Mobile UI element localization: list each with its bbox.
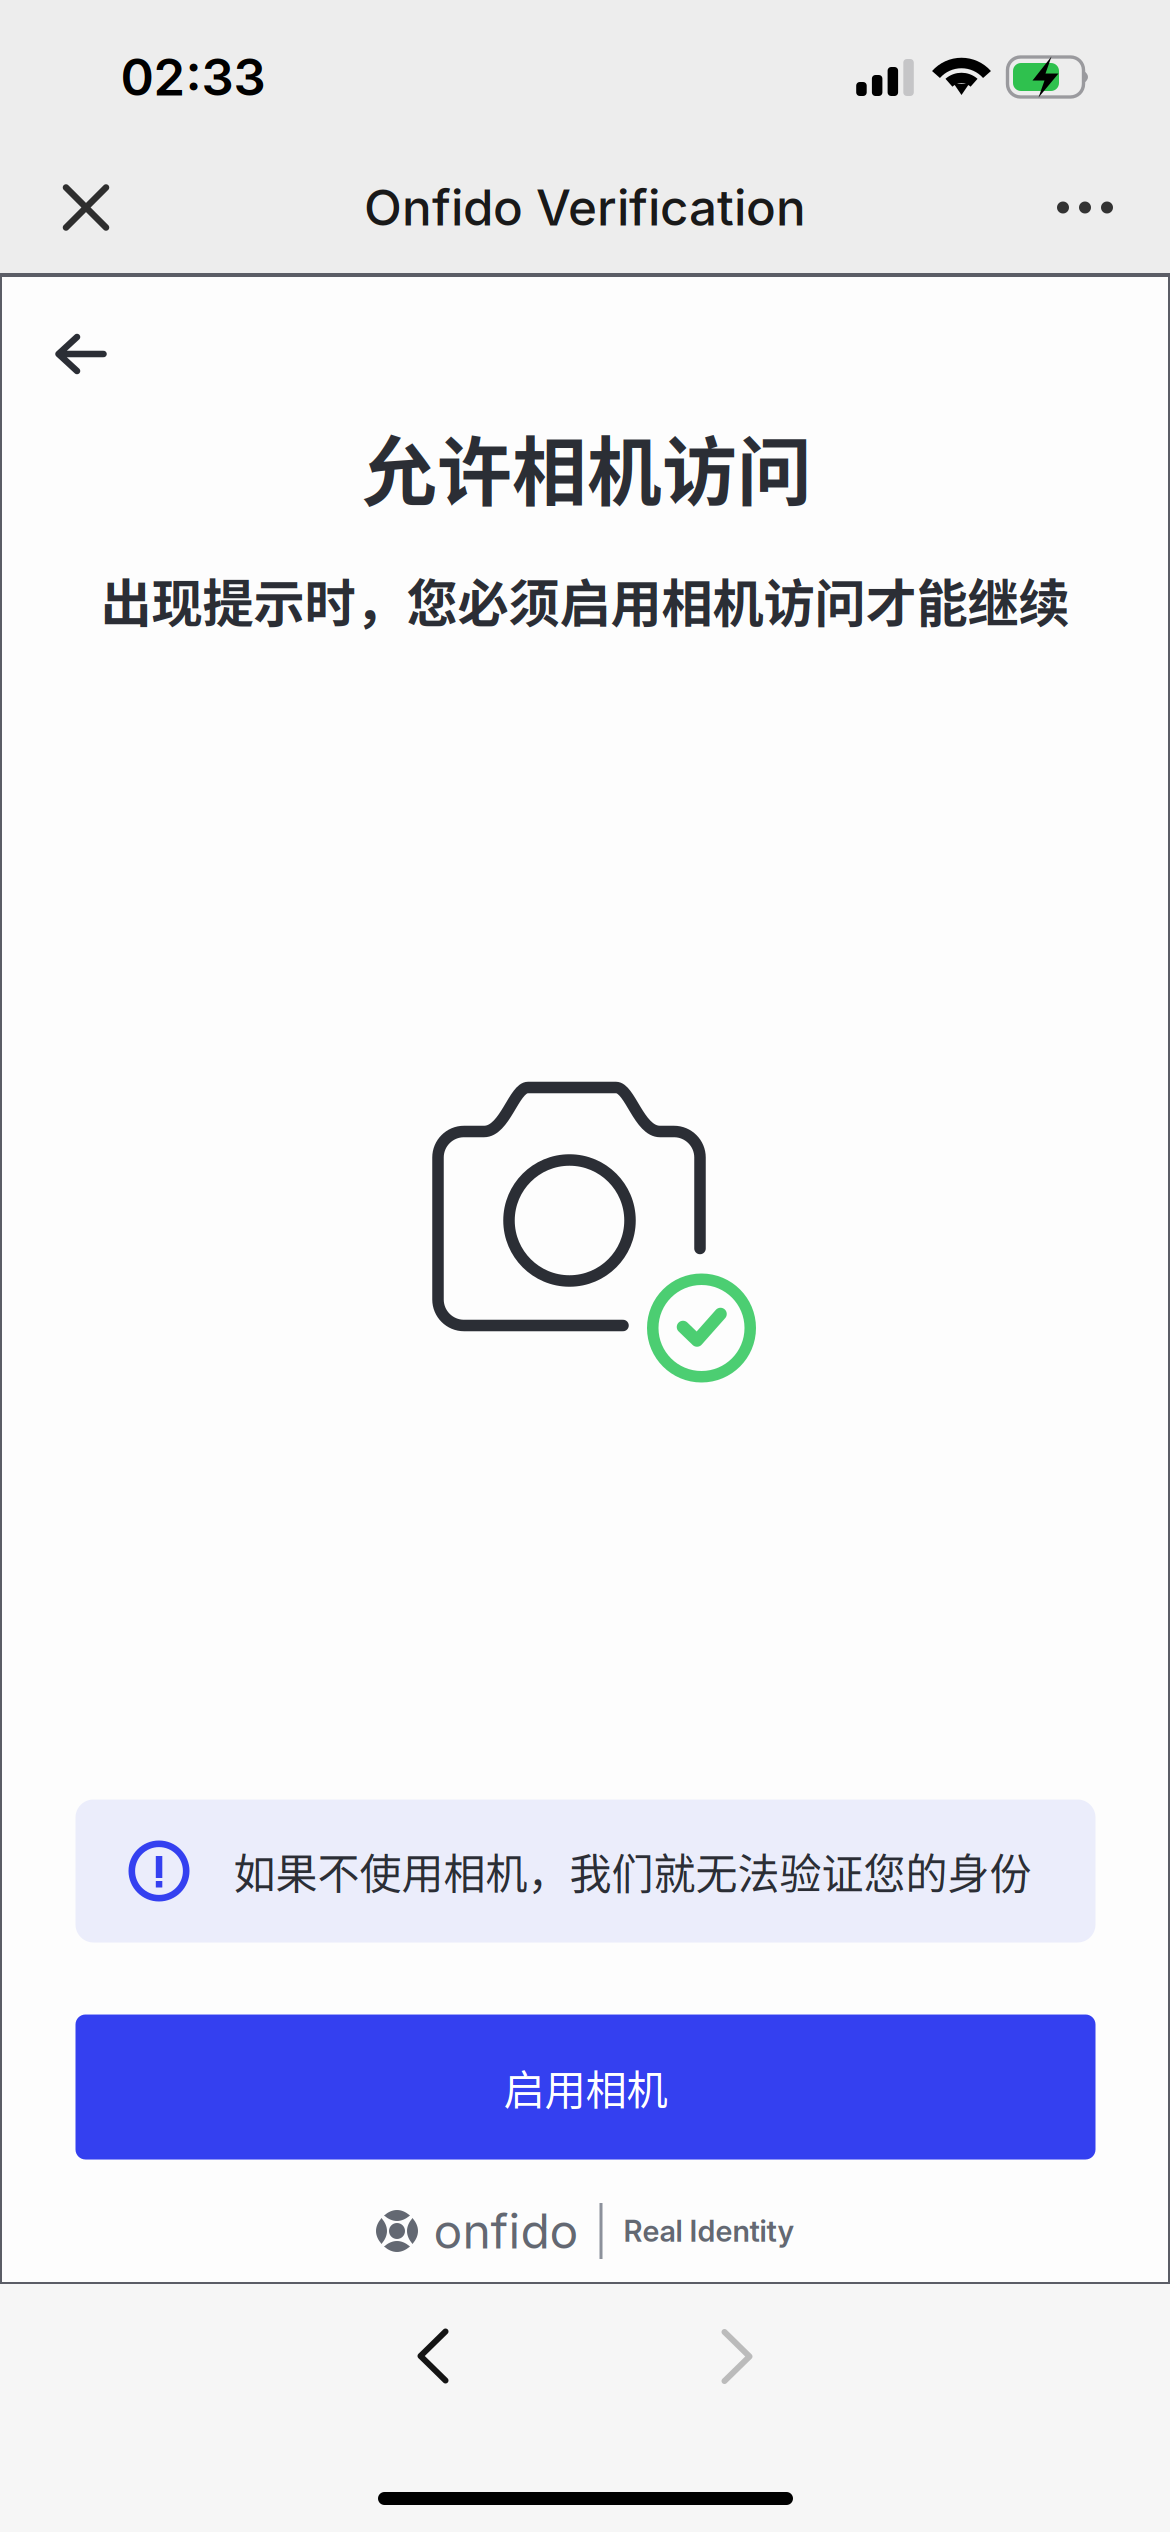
- staticText: 启用相机: [503, 2057, 667, 2117]
- staticText: 02:33: [120, 46, 265, 108]
- staticText: 允许相机访问: [362, 413, 812, 521]
- button[interactable]: Back: [358, 2291, 508, 2421]
- staticText: Real Identity: [623, 2213, 794, 2249]
- button[interactable]: Close: [30, 151, 142, 263]
- staticText: 如果不使用相机，我们就无法验证您的身份: [233, 1841, 1031, 1901]
- button[interactable]: Back: [23, 298, 138, 410]
- button[interactable]: 启用相机: [75, 2014, 1095, 2159]
- button[interactable]: Forward: [662, 2291, 812, 2421]
- staticText: 出现提示时，您必须启用相机访问才能继续: [100, 563, 1069, 637]
- button[interactable]: More: [1029, 151, 1141, 263]
- staticText: onfido: [433, 2202, 578, 2260]
- staticText: Onfido Verification: [364, 178, 806, 237]
